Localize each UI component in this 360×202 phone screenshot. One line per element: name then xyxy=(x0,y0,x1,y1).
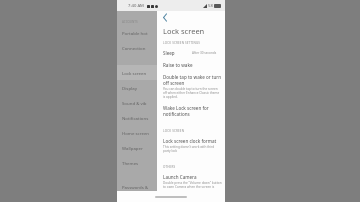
staticText: Lock screen clock format xyxy=(163,138,217,144)
button[interactable]: Lock screen xyxy=(117,65,163,80)
staticText: Lock screen xyxy=(122,70,147,76)
staticText: 7:40 AM xyxy=(128,3,144,9)
staticText: Passwords & xyxy=(122,184,149,190)
staticText: This setting doesn't work with third par… xyxy=(163,145,222,153)
button[interactable]: Sleep xyxy=(157,47,225,59)
button[interactable]: Portable hot xyxy=(117,25,163,40)
button[interactable]: Home screen xyxy=(117,125,163,140)
button[interactable]: Display xyxy=(117,80,163,95)
button[interactable]: Notifications xyxy=(117,110,163,125)
button[interactable]: Themes xyxy=(117,155,163,170)
staticText: Sleep xyxy=(163,50,175,56)
staticText: After 30 seconds xyxy=(192,51,217,55)
staticText: Double tap to wake or turn off screen xyxy=(163,74,222,86)
button[interactable]: Sound & vib xyxy=(117,95,163,110)
staticText: OTHERS xyxy=(163,165,176,169)
staticText: Double press the "Volume down" button to… xyxy=(163,181,222,188)
staticText: Wake Lock screen for notifications xyxy=(163,105,222,117)
staticText: Wallpaper xyxy=(122,145,143,151)
staticText: You can double tap to turn the screen of… xyxy=(163,87,222,99)
button[interactable]: Connection xyxy=(117,40,163,55)
button[interactable]: Raise to wake xyxy=(157,59,225,71)
button[interactable]: Passwords & xyxy=(117,182,163,191)
button[interactable]: Wallpaper xyxy=(117,140,163,155)
staticText: Notifications xyxy=(122,115,149,121)
staticText: Connection xyxy=(122,45,146,51)
staticText: Lock screen xyxy=(163,26,205,36)
button[interactable]: Launch Camera xyxy=(157,171,225,191)
button[interactable]: Wake Lock screen for notifications xyxy=(157,102,225,120)
staticText: Themes xyxy=(122,160,139,166)
staticText: Portable hot xyxy=(122,30,148,36)
staticText: 58 xyxy=(208,3,213,9)
button[interactable]: Lock screen clock format xyxy=(157,135,225,156)
staticText: Sound & vib xyxy=(122,100,147,106)
button[interactable]: Double tap to wake or turn off screen xyxy=(157,71,225,102)
staticText: Display xyxy=(122,85,137,91)
staticText: Home screen xyxy=(122,130,150,136)
staticText: Raise to wake xyxy=(163,62,193,68)
staticText: ACCOUNTS xyxy=(122,20,138,24)
button[interactable]: Back xyxy=(157,11,173,24)
staticText: LOCK SCREEN xyxy=(163,129,185,133)
staticText: LOCK SCREEN SETTINGS xyxy=(163,41,201,45)
staticText: Launch Camera xyxy=(163,174,197,180)
